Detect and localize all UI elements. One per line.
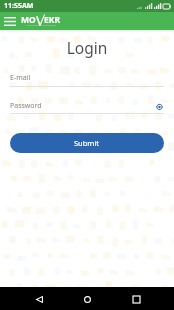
button[interactable]: Show password bbox=[155, 102, 164, 111]
button[interactable]: Back bbox=[29, 289, 49, 309]
staticText: Submit bbox=[74, 138, 100, 148]
staticText: EKR bbox=[44, 14, 60, 26]
button[interactable]: Submit bbox=[10, 133, 164, 153]
button[interactable]: Home bbox=[77, 289, 97, 309]
staticText: MO bbox=[21, 14, 36, 26]
staticText: Login bbox=[0, 37, 174, 58]
staticText: Password bbox=[10, 101, 42, 111]
staticText: E-mail bbox=[10, 73, 31, 83]
button[interactable]: Menu bbox=[4, 17, 16, 26]
staticText: 11:55AM bbox=[4, 1, 34, 11]
button[interactable]: Recents bbox=[126, 289, 146, 309]
